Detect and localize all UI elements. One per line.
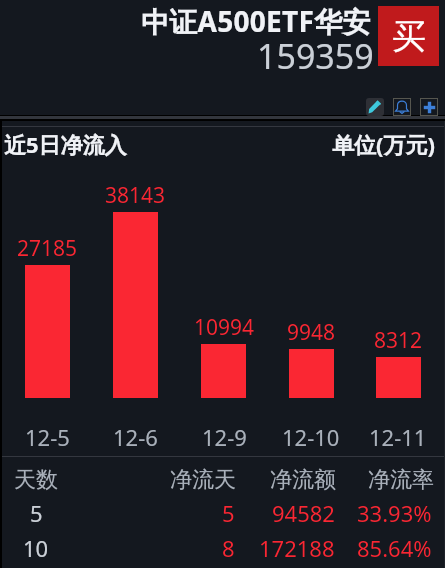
button[interactable]: 中证A500ETF华安 xyxy=(130,0,375,72)
button[interactable]: 买 xyxy=(378,6,439,66)
staticText: 38143 xyxy=(105,181,166,210)
staticText: 5 xyxy=(222,498,235,528)
staticText: 净流额 xyxy=(270,466,336,494)
staticText: 近5日净流入 xyxy=(4,129,127,159)
staticText: 12-10 xyxy=(282,422,340,452)
staticText: 27185 xyxy=(17,234,78,263)
staticText: 9948 xyxy=(287,318,336,347)
staticText: 12-9 xyxy=(202,422,247,452)
button[interactable]: Price alert xyxy=(393,98,411,116)
staticText: 12-5 xyxy=(25,422,70,452)
staticText: 单位(万元) xyxy=(332,129,435,159)
staticText: 中证A500ETF华安 xyxy=(141,2,371,40)
staticText: 94582 xyxy=(272,498,335,528)
staticText: 159359 xyxy=(257,33,374,79)
button[interactable]: Edit xyxy=(366,98,384,116)
staticText: 净流率 xyxy=(368,466,434,494)
staticText: 172188 xyxy=(259,533,335,563)
staticText: 5 xyxy=(30,498,43,528)
staticText: 净流天 xyxy=(170,466,236,494)
staticText: 10 xyxy=(23,533,49,563)
button[interactable]: Add to watchlist xyxy=(420,98,438,116)
staticText: 85.64% xyxy=(357,533,432,563)
staticText: 12-11 xyxy=(369,422,427,452)
staticText: 10994 xyxy=(194,313,255,342)
staticText: 天数 xyxy=(14,466,58,494)
staticText: 33.93% xyxy=(357,498,432,528)
staticText: 买 xyxy=(392,15,426,58)
staticText: 12-6 xyxy=(113,422,158,452)
staticText: 8 xyxy=(222,533,235,563)
staticText: 8312 xyxy=(374,326,423,355)
